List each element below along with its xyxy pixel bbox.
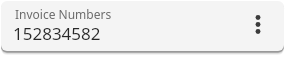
button[interactable]: More options [245,13,271,39]
staticText: Invoice Numbers [15,6,112,22]
button[interactable]: Invoice Numbers [1,1,284,51]
staticText: 152834582 [13,22,101,45]
